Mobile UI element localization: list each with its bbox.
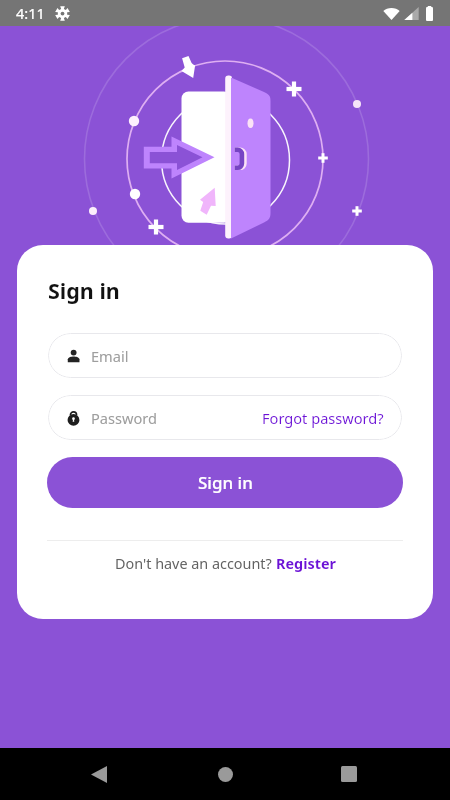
staticText: Don't have an account? [115,554,276,574]
staticText: Sign in [48,276,120,305]
button[interactable]: Recents [327,748,371,800]
staticText: Sign in [198,471,253,494]
button[interactable]: Sign in [47,457,403,508]
staticText: Password [91,408,158,428]
button[interactable]: Forgot password? [262,408,384,428]
button[interactable]: Password [48,395,402,440]
button[interactable]: Back [77,748,121,800]
staticText: Email [91,346,129,366]
button[interactable]: Home [203,748,247,800]
button[interactable]: Register [276,554,336,574]
button[interactable]: Email [48,333,402,378]
staticText: 4:11 [16,3,45,23]
